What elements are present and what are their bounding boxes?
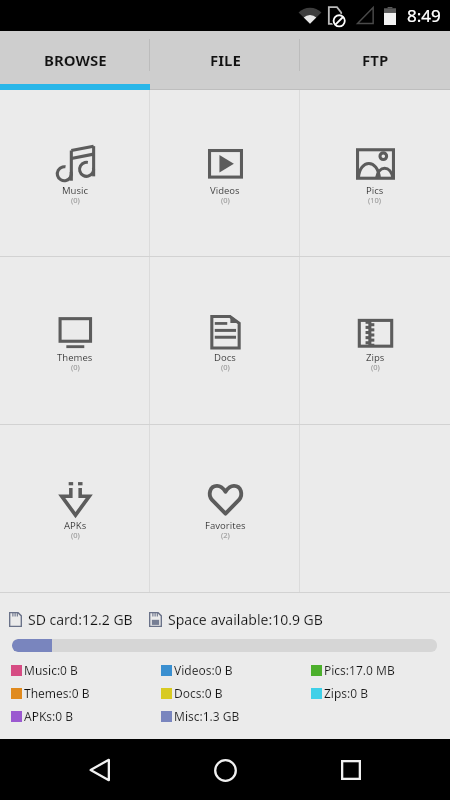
staticText: (0): [221, 195, 230, 205]
staticText: Videos: [210, 184, 240, 197]
staticText: Music: [62, 184, 89, 197]
button[interactable]: Music: [0, 90, 150, 256]
staticText: FILE: [210, 50, 241, 70]
staticText: Themes:0 B: [24, 685, 90, 701]
button[interactable]: Pics: [300, 90, 450, 256]
staticText: Videos:0 B: [174, 662, 233, 678]
staticText: Music:0 B: [24, 662, 78, 678]
staticText: Docs:0 B: [174, 685, 223, 701]
staticText: FTP: [362, 50, 389, 70]
staticText: SD card:12.2 GB: [28, 610, 133, 629]
button[interactable]: Zips: [300, 257, 450, 424]
staticText: (0): [221, 362, 230, 372]
staticText: (10): [368, 195, 382, 205]
staticText: (0): [371, 362, 380, 372]
staticText: Docs: [214, 351, 236, 364]
staticText: (0): [71, 362, 80, 372]
staticText: Themes: [57, 351, 93, 364]
button[interactable]: Back: [72, 743, 126, 797]
button[interactable]: Themes: [0, 257, 150, 424]
staticText: APKs: [64, 519, 87, 532]
staticText: APKs:0 B: [24, 708, 74, 724]
button[interactable]: APKs: [0, 425, 150, 592]
staticText: (0): [71, 530, 80, 540]
button[interactable]: BROWSE: [0, 31, 150, 90]
staticText: 8:49: [407, 4, 441, 27]
staticText: (0): [71, 195, 80, 205]
staticText: Zips: [366, 351, 385, 364]
staticText: Misc:1.3 GB: [174, 708, 240, 724]
staticText: BROWSE: [44, 50, 107, 70]
button[interactable]: Home: [198, 743, 252, 797]
staticText: Space available:10.9 GB: [168, 610, 323, 629]
button[interactable]: Videos: [150, 90, 300, 256]
staticText: Pics:17.0 MB: [324, 662, 395, 678]
button[interactable]: Recent apps: [324, 743, 378, 797]
staticText: Zips:0 B: [324, 685, 369, 701]
staticText: Pics: [366, 184, 384, 197]
button[interactable]: FILE: [150, 31, 300, 90]
staticText: Favorites: [205, 519, 246, 532]
staticText: (2): [221, 530, 230, 540]
button[interactable]: Favorites: [150, 425, 300, 592]
button[interactable]: Docs: [150, 257, 300, 424]
button[interactable]: FTP: [300, 31, 450, 90]
